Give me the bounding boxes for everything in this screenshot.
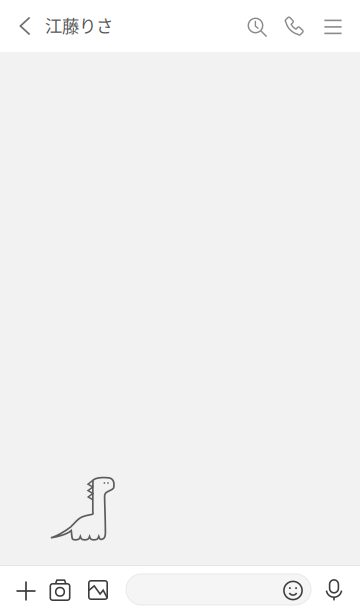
button[interactable]: Photo library: [81, 565, 115, 615]
button[interactable]: Message input: [126, 574, 311, 605]
button[interactable]: Search: [238, 2, 278, 54]
button[interactable]: Camera: [43, 565, 77, 615]
button[interactable]: Call: [274, 0, 314, 52]
button[interactable]: More options: [9, 566, 43, 616]
button[interactable]: Menu: [313, 1, 353, 53]
button[interactable]: Back: [7, 0, 43, 52]
staticText: 江藤りさ: [45, 12, 113, 38]
button[interactable]: Voice message: [318, 565, 350, 615]
